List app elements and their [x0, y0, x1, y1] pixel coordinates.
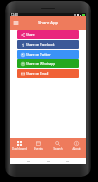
staticText: About — [72, 147, 81, 151]
staticText: Share — [26, 33, 35, 37]
button[interactable]: Dashboard — [10, 138, 29, 158]
button[interactable]: About — [67, 138, 86, 158]
button[interactable]: Share on Whatsapp — [17, 59, 79, 68]
staticText: Dashboard — [12, 147, 27, 151]
staticText: 12:30 — [11, 13, 18, 16]
staticText: Events — [34, 147, 43, 151]
staticText: Share on Whatsapp — [26, 62, 56, 66]
button[interactable]: Search — [48, 138, 67, 158]
staticText: Share on Email — [26, 72, 49, 76]
button[interactable]: Share — [17, 30, 79, 39]
staticText: Share on Facebook — [26, 43, 55, 47]
button[interactable]: Share on Twitter — [17, 50, 79, 59]
button[interactable]: Share on Email — [17, 69, 79, 78]
button[interactable]: Open navigation menu — [12, 19, 20, 27]
button[interactable]: Share on Facebook — [17, 40, 79, 49]
staticText: Search — [53, 147, 63, 151]
staticText: Share App — [38, 20, 59, 26]
staticText: Share on Twitter — [26, 53, 51, 57]
button[interactable]: Events — [29, 138, 48, 158]
